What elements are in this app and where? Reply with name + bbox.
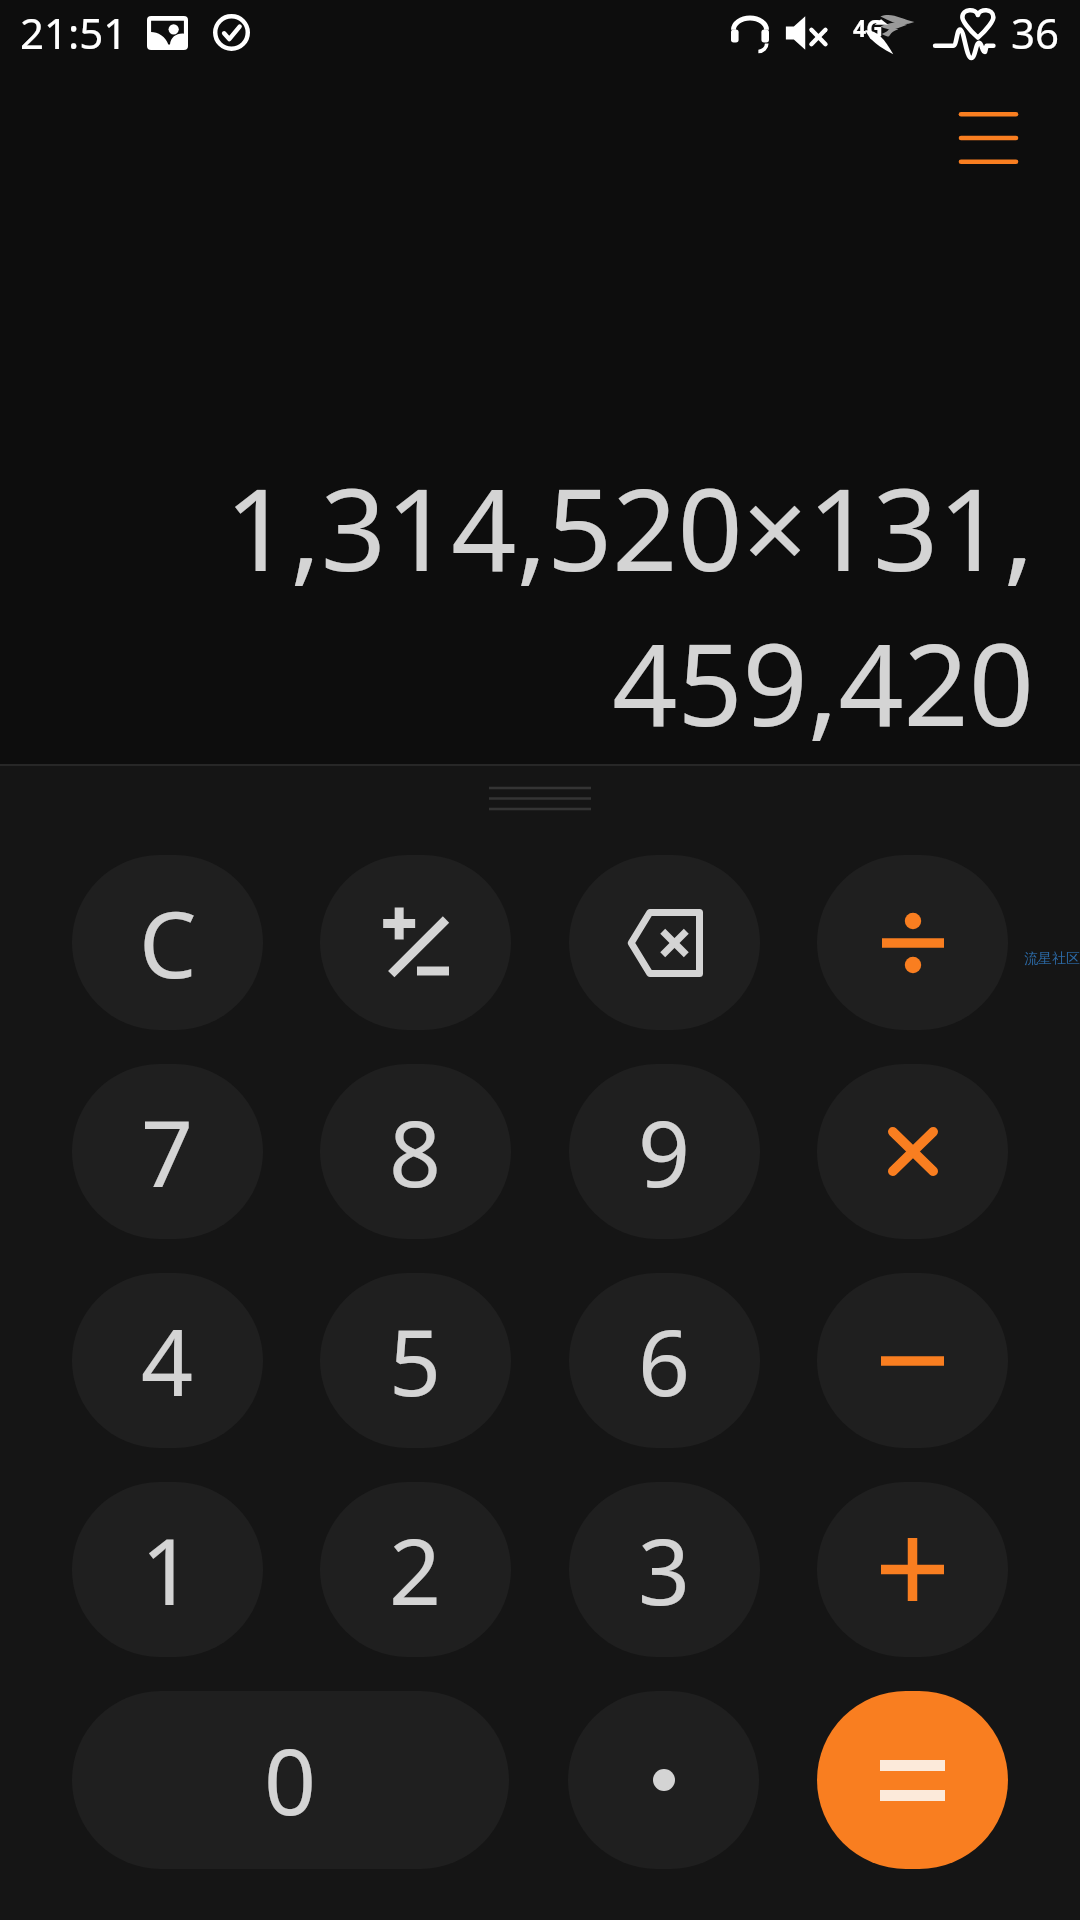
button[interactable]: Delete <box>569 855 760 1030</box>
button[interactable] <box>817 1064 1008 1239</box>
button[interactable]: 0 <box>72 1691 509 1869</box>
staticText: 流星社区 <box>1024 950 1080 968</box>
button[interactable]: 9 <box>569 1064 760 1239</box>
staticText: 9 <box>638 1090 691 1214</box>
staticText: 21:51 <box>20 4 128 61</box>
button[interactable]: 5 <box>320 1273 511 1448</box>
staticText: 4G <box>853 12 883 43</box>
button[interactable]: Toggle sign <box>320 855 511 1030</box>
button[interactable]: 8 <box>320 1064 511 1239</box>
staticText: 6 <box>638 1299 691 1423</box>
button[interactable]: Decimal point <box>568 1691 759 1869</box>
staticText: 7 <box>141 1090 194 1214</box>
button[interactable]: 2 <box>320 1482 511 1657</box>
staticText: 2 <box>389 1508 442 1632</box>
staticText: 1 <box>141 1508 194 1632</box>
button[interactable]: Equals <box>817 1691 1008 1869</box>
button[interactable]: 7 <box>72 1064 263 1239</box>
button[interactable]: 4 <box>72 1273 263 1448</box>
staticText: 8 <box>389 1090 442 1214</box>
staticText: 3 <box>638 1508 691 1632</box>
button[interactable]: Subtract <box>817 1273 1008 1448</box>
staticText: 4 <box>141 1299 194 1423</box>
button[interactable]: 1 <box>72 1482 263 1657</box>
staticText: 1,314,520×131, 459,420 <box>225 449 1034 759</box>
button[interactable]: 6 <box>569 1273 760 1448</box>
button[interactable]: C <box>72 855 263 1030</box>
staticText: 36 <box>1011 4 1060 61</box>
button[interactable]: Menu <box>933 88 1043 188</box>
staticText: C <box>139 881 197 1005</box>
staticText: 0 <box>264 1718 317 1842</box>
button[interactable]: Divide <box>817 855 1008 1030</box>
button[interactable]: 3 <box>569 1482 760 1657</box>
button[interactable]: Add <box>817 1482 1008 1657</box>
staticText: 5 <box>389 1299 442 1423</box>
